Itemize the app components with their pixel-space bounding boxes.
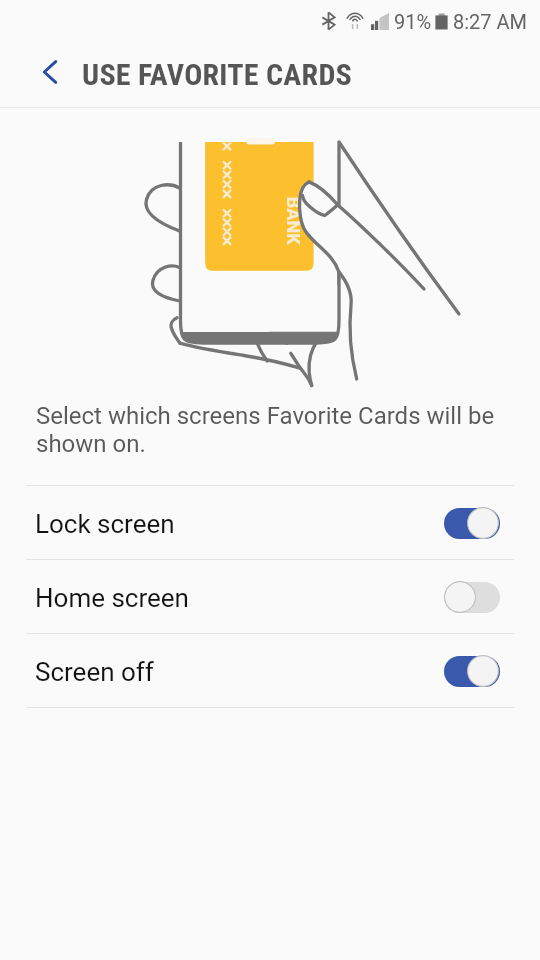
button[interactable]: Off xyxy=(444,581,500,613)
button[interactable]: Lock screen xyxy=(0,486,540,559)
button[interactable]: Screen off xyxy=(0,634,540,707)
button[interactable]: On xyxy=(444,655,500,687)
staticText: Select which screens Favorite Cards will… xyxy=(36,402,495,458)
staticText: 91% xyxy=(394,10,432,33)
staticText: Lock screen xyxy=(35,509,175,539)
button[interactable]: On xyxy=(444,507,500,539)
staticText: USE FAVORITE CARDS xyxy=(82,57,353,92)
button[interactable]: Navigate up xyxy=(0,42,84,107)
staticText: Home screen xyxy=(35,583,189,613)
staticText: 8:27 AM xyxy=(453,10,528,33)
button[interactable]: Home screen xyxy=(0,560,540,633)
staticText: Screen off xyxy=(35,657,154,687)
